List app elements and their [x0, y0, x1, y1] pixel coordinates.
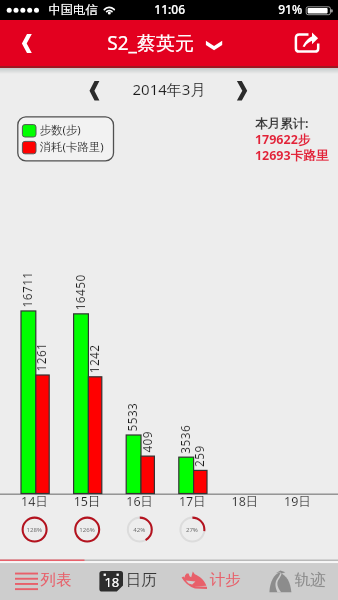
button[interactable]: 轨迹: [254, 563, 338, 600]
button[interactable]: Previous month: [78, 75, 110, 107]
button[interactable]: Next month: [226, 75, 258, 107]
button[interactable]: Back: [6, 26, 44, 60]
button[interactable]: 日历: [85, 563, 170, 600]
button[interactable]: Share: [288, 26, 328, 60]
button[interactable]: 计步: [169, 563, 254, 600]
button[interactable]: 列表: [0, 563, 85, 600]
button[interactable]: [100, 26, 232, 60]
